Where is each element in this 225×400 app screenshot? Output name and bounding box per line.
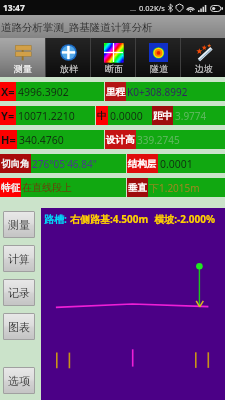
staticText: 3.9774 xyxy=(175,109,207,123)
staticText: H= xyxy=(1,132,16,147)
staticText: 276°05'46.84" xyxy=(32,157,97,171)
staticText: 在直线段上 xyxy=(22,181,72,194)
staticText: 隧道 xyxy=(150,63,168,74)
staticText: 设计高 xyxy=(106,134,135,146)
staticText: Y= xyxy=(1,108,15,123)
staticText: 切向角 xyxy=(1,158,30,170)
staticText: 距中 xyxy=(153,110,172,122)
staticText: 13:47 xyxy=(3,2,25,14)
staticText: 选项 xyxy=(8,374,30,388)
staticText: 里程 xyxy=(106,86,125,98)
button[interactable]: 边坡 xyxy=(181,38,225,77)
staticText: 断面 xyxy=(105,63,123,74)
button[interactable]: 放样 xyxy=(46,38,90,77)
staticText: 0.0000 xyxy=(110,109,143,123)
staticText: 特征 xyxy=(1,182,20,194)
staticText: 记录 xyxy=(8,286,30,300)
staticText: 横坡:-2.000% xyxy=(149,212,215,226)
staticText: ... xyxy=(130,3,137,13)
staticText: 路槽: xyxy=(44,212,70,226)
staticText: 339.2745 xyxy=(137,133,180,147)
staticText: 结构层 xyxy=(128,158,157,170)
staticText: 道路分析掌测_路基隧道计算分析 xyxy=(1,20,153,34)
button[interactable]: 计算 xyxy=(4,246,34,271)
staticText: K0+308.8992 xyxy=(127,85,188,99)
staticText: 下1.2015m xyxy=(149,181,200,195)
button[interactable]: 记录 xyxy=(4,280,34,305)
staticText: 右侧路基:4.500m xyxy=(70,212,149,226)
staticText: 图表 xyxy=(8,320,30,334)
button[interactable]: 测量 xyxy=(4,212,34,237)
staticText: 10071.2210 xyxy=(18,109,75,123)
button[interactable]: 测量 xyxy=(0,38,45,77)
staticText: 计算 xyxy=(8,252,30,266)
staticText: 0.02K/s xyxy=(139,3,165,13)
button[interactable]: 选项 xyxy=(4,368,34,393)
button[interactable]: 断面 xyxy=(91,38,135,77)
staticText: 边坡 xyxy=(195,63,213,74)
staticText: 340.4760 xyxy=(19,133,64,147)
staticText: 测量 xyxy=(14,63,32,74)
staticText: 垂直 xyxy=(128,182,147,194)
staticText: 0.0001 xyxy=(160,157,193,171)
staticText: 中 xyxy=(97,110,107,122)
button[interactable]: 隧道 xyxy=(136,38,180,77)
button[interactable]: 图表 xyxy=(4,314,34,339)
staticText: 放样 xyxy=(60,63,78,74)
staticText: 4996.3902 xyxy=(18,85,69,99)
staticText: X= xyxy=(1,84,15,99)
staticText: 测量 xyxy=(8,218,30,232)
